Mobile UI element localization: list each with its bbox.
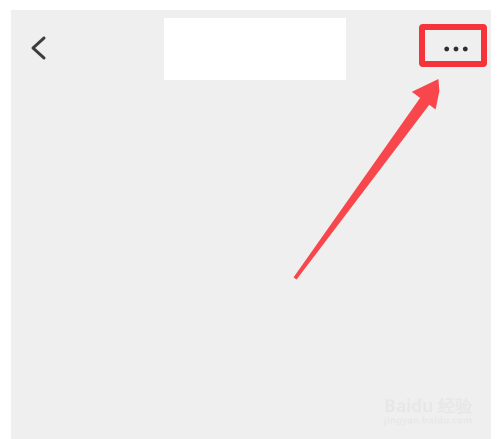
staticText: Baidu 经验 (384, 394, 472, 417)
button[interactable]: Back (22, 24, 55, 72)
button[interactable]: More options (427, 32, 485, 66)
